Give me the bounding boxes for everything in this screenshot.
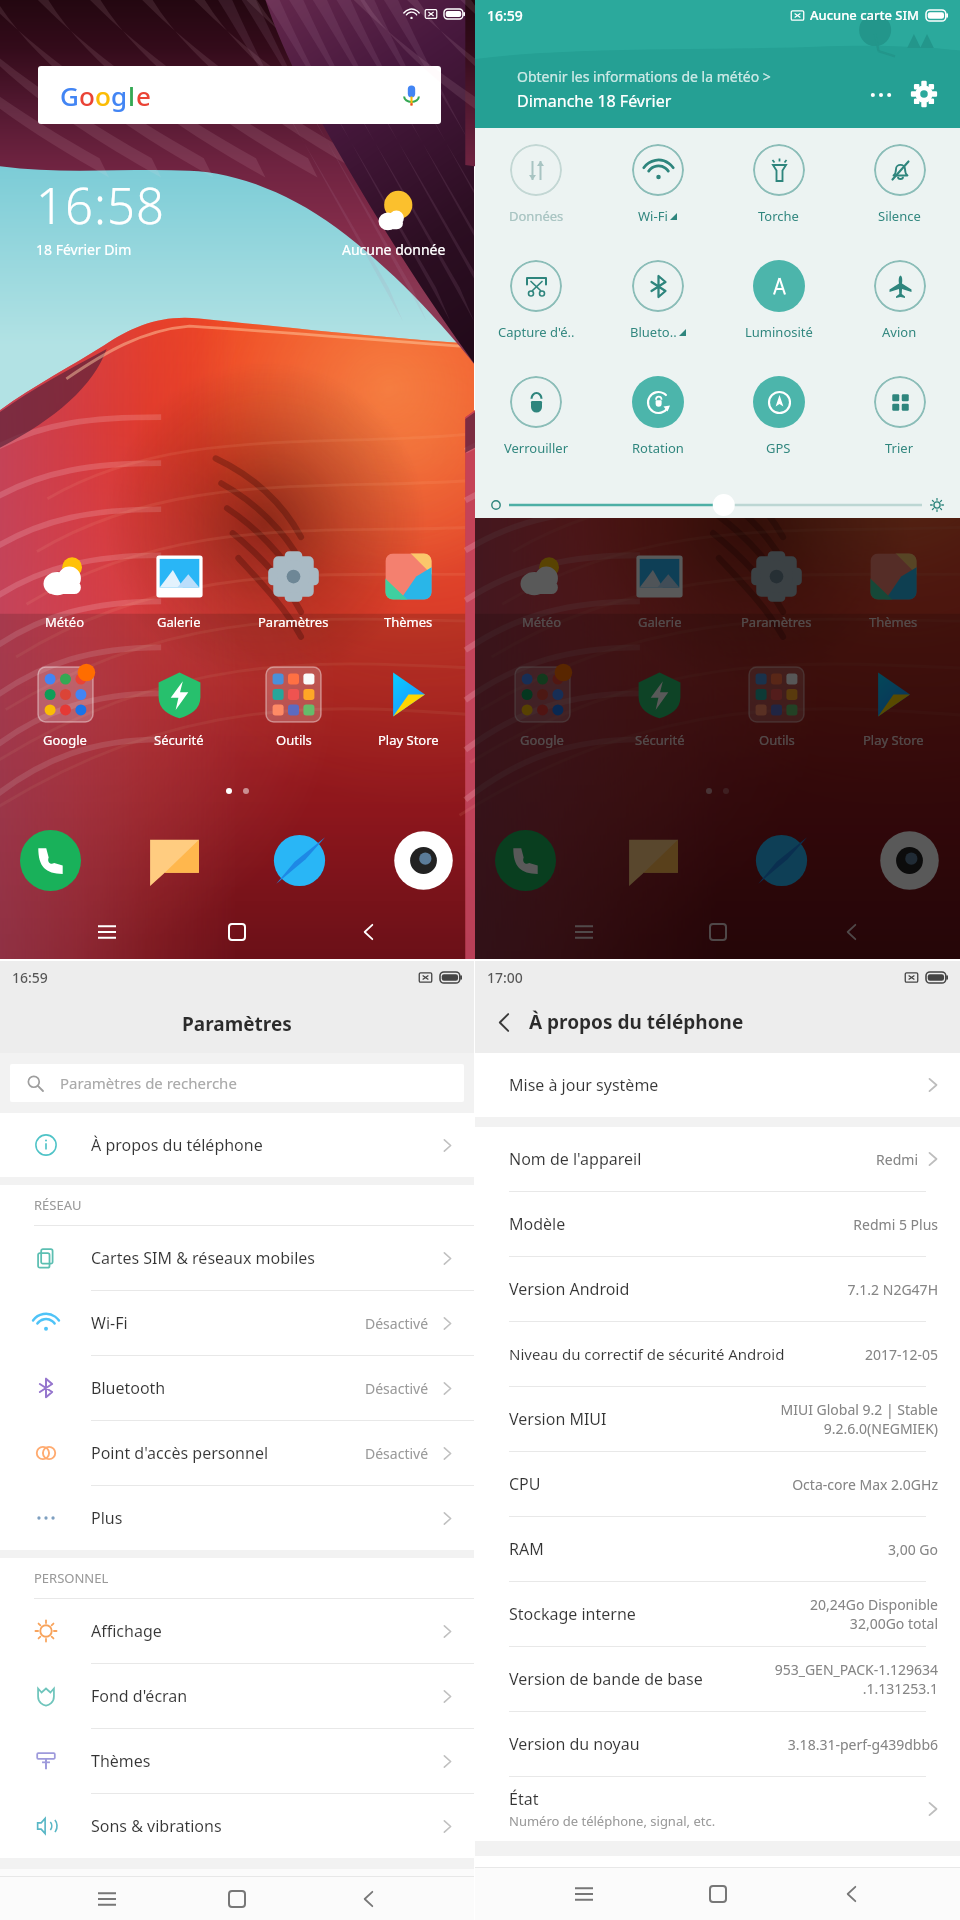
button[interactable]: Paramètres (718, 549, 835, 631)
button[interactable]: Back (827, 908, 875, 956)
button[interactable]: App 3 (879, 830, 940, 891)
button[interactable]: Affichage (0, 1599, 474, 1664)
button[interactable]: Outils (718, 667, 835, 749)
button[interactable]: Play Store (351, 667, 466, 749)
button[interactable]: Back (344, 1877, 392, 1920)
staticText: Météo (522, 613, 562, 631)
button[interactable]: Version de bande de base (475, 1647, 960, 1712)
button[interactable]: Cartes SIM & réseaux mobiles (0, 1226, 474, 1291)
staticText: Thèmes (91, 1750, 151, 1772)
staticText: CPU (509, 1473, 541, 1495)
staticText: Météo (45, 613, 85, 631)
button[interactable]: Galerie (601, 549, 718, 631)
staticText: Thèmes (869, 613, 918, 631)
staticText: Sécurité (154, 731, 204, 749)
button[interactable]: Fond d'écran (0, 1664, 474, 1729)
button[interactable]: Sécurité (122, 667, 236, 749)
button[interactable]: Google (483, 667, 601, 749)
button[interactable]: Bluetooth (0, 1356, 474, 1421)
button[interactable]: App 0 (20, 830, 81, 891)
button[interactable]: Menu (560, 1870, 608, 1918)
button[interactable]: Galerie (122, 549, 236, 631)
button[interactable]: Rotation (597, 376, 718, 457)
button[interactable]: App 1 (144, 830, 205, 891)
button[interactable]: App 2 (269, 830, 330, 891)
button[interactable]: Torche (718, 144, 839, 225)
button[interactable]: Menu (83, 1877, 131, 1920)
staticText: PERSONNEL (34, 1569, 109, 1587)
button[interactable]: Wi-Fi (0, 1291, 474, 1356)
button[interactable]: Play Store (835, 667, 952, 749)
staticText: GPS (766, 439, 791, 457)
button[interactable]: Home (694, 908, 742, 956)
button[interactable]: Blueto.. (597, 260, 718, 341)
button[interactable]: Mise à jour système (475, 1053, 960, 1117)
button[interactable]: Thèmes (0, 1729, 474, 1794)
staticText: À propos du téléphone (529, 1009, 744, 1035)
button[interactable]: GPS (718, 376, 839, 457)
button[interactable]: Nom de l'appareil (475, 1127, 960, 1192)
button[interactable]: Avion (839, 260, 960, 341)
staticText: Sécurité (635, 731, 685, 749)
button[interactable]: À propos du téléphone (0, 1113, 474, 1177)
button[interactable]: G (38, 66, 441, 124)
staticText: Torche (758, 207, 799, 225)
button[interactable]: Verrouiller (475, 376, 597, 457)
button[interactable]: Sons & vibrations (0, 1794, 474, 1858)
staticText: Données (509, 207, 564, 225)
button[interactable]: Version MIUI (475, 1387, 960, 1452)
button[interactable]: Home (213, 908, 261, 956)
staticText: Wi-Fi (91, 1312, 128, 1334)
button[interactable]: More options (864, 78, 898, 112)
button[interactable]: État (475, 1777, 960, 1841)
button[interactable]: Modèle (475, 1192, 960, 1257)
button[interactable]: Menu (560, 908, 608, 956)
button[interactable]: Version Android (475, 1257, 960, 1322)
staticText: e (136, 78, 151, 113)
button[interactable]: Wi-Fi (597, 144, 718, 225)
staticText: 953_GEN_PACK-1.129634 .1.131253.1 (774, 1660, 938, 1698)
button[interactable]: Luminosité (718, 260, 839, 341)
button[interactable]: Outils (236, 667, 351, 749)
staticText: 18 Février Dim (36, 240, 132, 259)
button[interactable]: Capture d'é.. (475, 260, 597, 341)
button[interactable]: CPU (475, 1452, 960, 1517)
button[interactable]: Données (475, 144, 597, 225)
button[interactable]: Google (8, 667, 122, 749)
button[interactable]: Paramètres (236, 549, 351, 631)
button[interactable]: Menu (83, 908, 131, 956)
button[interactable]: Thèmes (835, 549, 952, 631)
button[interactable]: Home (694, 1870, 742, 1918)
button[interactable]: Version du noyau (475, 1712, 960, 1777)
staticText: Version MIUI (509, 1408, 607, 1430)
button[interactable]: Silence (839, 144, 960, 225)
button[interactable]: Niveau du correctif de sécurité Android (475, 1322, 960, 1387)
staticText: Dimanche 18 Février (517, 90, 672, 112)
staticText: Thèmes (384, 613, 433, 631)
button[interactable]: Back (344, 908, 392, 956)
button[interactable]: App 1 (623, 830, 684, 891)
staticText: Aucune donnée (342, 240, 446, 259)
button[interactable]: Settings (906, 76, 942, 112)
staticText: 3,00 Go (887, 1540, 938, 1559)
button[interactable]: Thèmes (351, 549, 466, 631)
button[interactable]: Météo (483, 549, 601, 631)
button[interactable]: Sécurité (601, 667, 718, 749)
staticText: MIUI Global 9.2 | Stable 9.2.6.0(NEGMIEK… (780, 1400, 938, 1438)
button[interactable]: Point d'accès personnel (0, 1421, 474, 1486)
staticText: Paramètres de recherche (60, 1073, 237, 1093)
button[interactable]: Home (213, 1877, 261, 1920)
button[interactable]: App 0 (495, 830, 556, 891)
staticText: Avion (882, 323, 917, 341)
button[interactable]: Trier (839, 376, 960, 457)
button[interactable]: RAM (475, 1517, 960, 1582)
button[interactable]: Back (827, 1870, 875, 1918)
button[interactable]: Back (484, 1002, 524, 1042)
button[interactable]: App 3 (393, 830, 454, 891)
button[interactable]: Stockage interne (475, 1582, 960, 1647)
button[interactable]: Plus (0, 1486, 474, 1550)
staticText: Aucune carte SIM (810, 6, 920, 24)
button[interactable]: App 2 (751, 830, 812, 891)
button[interactable]: Météo (8, 549, 122, 631)
button[interactable]: Paramètres de recherche (10, 1064, 464, 1102)
